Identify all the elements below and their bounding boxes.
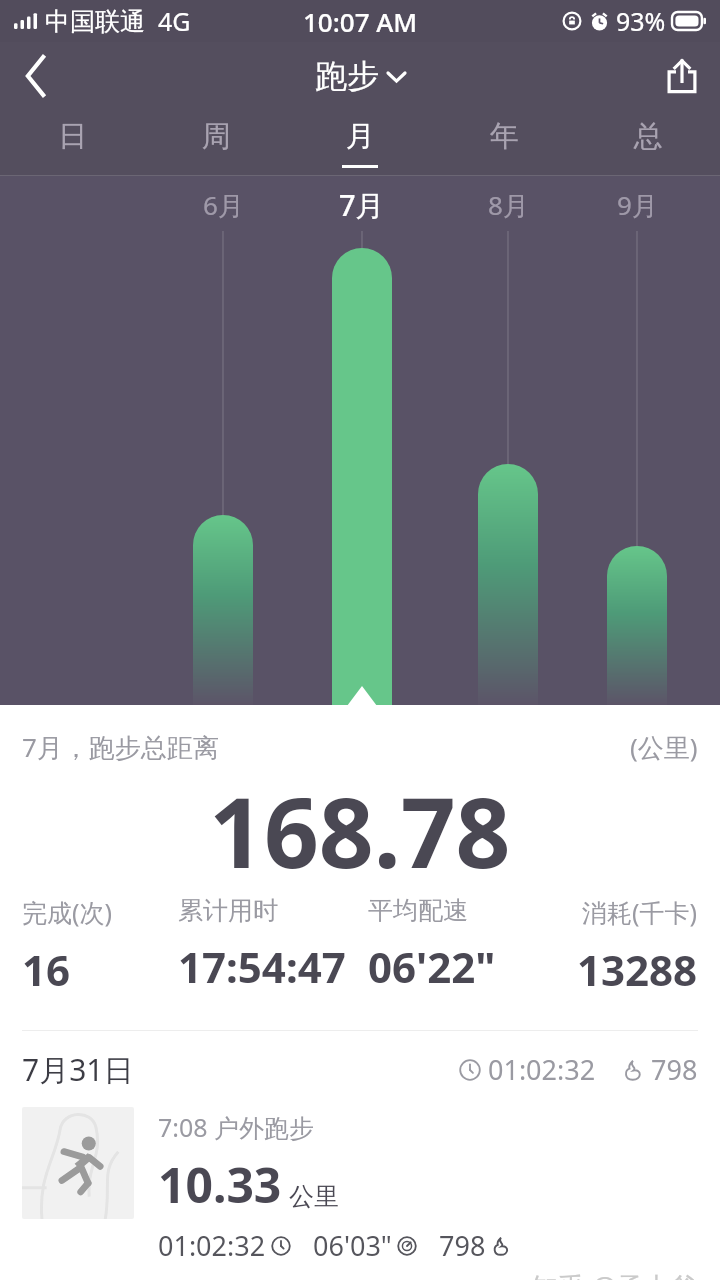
staticText: 01:02:32	[488, 1051, 596, 1088]
staticText: 06'22"	[368, 938, 496, 995]
staticText: 总	[634, 118, 663, 155]
staticText: 01:02:32	[158, 1227, 266, 1264]
button[interactable]: 总	[576, 110, 720, 176]
button[interactable]: 7月	[312, 184, 412, 226]
staticText: 月	[346, 118, 375, 155]
staticText: (公里)	[630, 729, 698, 765]
staticText: 6月	[203, 187, 244, 223]
staticText: 平均配速	[368, 895, 468, 926]
button[interactable]: 跑步	[315, 56, 405, 96]
staticText: 16	[22, 941, 71, 998]
staticText: 168.78	[209, 765, 511, 877]
staticText: 消耗(千卡)	[582, 895, 698, 929]
button[interactable]: 月	[288, 110, 432, 176]
button[interactable]: 8月	[458, 184, 558, 226]
staticText: 7月31日	[22, 1049, 134, 1090]
staticText: 10:07 AM	[303, 4, 418, 39]
button[interactable]: 周	[144, 110, 288, 176]
staticText: 累计用时	[178, 895, 278, 926]
button[interactable]: 累计用时	[178, 895, 368, 995]
staticText: 10.33	[158, 1152, 282, 1217]
button[interactable]: 完成(次)	[22, 895, 178, 998]
staticText: 93%	[616, 4, 666, 38]
staticText: 798	[439, 1227, 486, 1264]
button[interactable]: 7:08 户外跑步	[22, 1107, 698, 1264]
staticText: 公里	[289, 1181, 339, 1212]
staticText: 7月，跑步总距离	[22, 729, 219, 765]
button[interactable]: Back	[0, 42, 72, 110]
staticText: 中国联通	[45, 6, 145, 37]
button[interactable]: 9月	[587, 184, 687, 226]
staticText: 知乎 @孟大爷	[531, 1268, 698, 1280]
button[interactable]: 6月	[173, 184, 273, 226]
staticText: 7:08 户外跑步	[158, 1110, 315, 1144]
staticText: 17:54:47	[178, 938, 346, 995]
staticText: 4G	[158, 4, 191, 38]
button[interactable]: 平均配速	[368, 895, 542, 995]
staticText: 8月	[488, 187, 529, 223]
staticText: 跑步	[315, 56, 379, 96]
staticText: 周	[202, 118, 231, 155]
button[interactable]: 日	[0, 110, 144, 176]
staticText: 13288	[577, 941, 698, 998]
button[interactable]: 消耗(千卡)	[542, 895, 698, 998]
staticText: 06'03"	[313, 1227, 392, 1264]
button[interactable]: Share	[644, 42, 720, 110]
staticText: 日	[58, 118, 87, 155]
staticText: 7月	[339, 185, 385, 225]
staticText: 798	[651, 1051, 698, 1088]
staticText: 完成(次)	[22, 895, 113, 929]
staticText: 9月	[617, 187, 658, 223]
staticText: 年	[490, 118, 519, 155]
button[interactable]: 年	[432, 110, 576, 176]
